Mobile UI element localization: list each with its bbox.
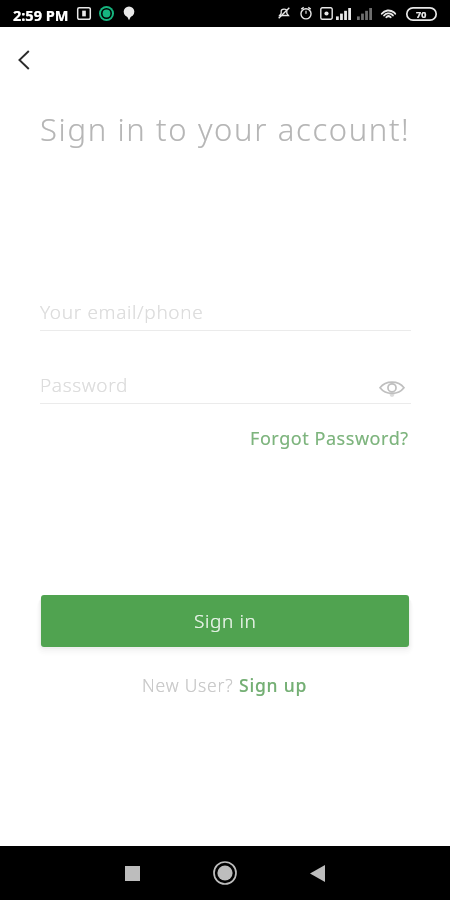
button[interactable]: Home: [197, 846, 253, 900]
button[interactable]: Back: [2, 38, 46, 82]
button[interactable]: Back: [289, 846, 345, 900]
staticText: Sign in to your account!: [40, 108, 411, 150]
staticText: New User?: [142, 673, 239, 697]
staticText: Forgot Password?: [250, 426, 409, 451]
staticText: Sign up: [239, 673, 308, 697]
staticText: 2:59 PM: [13, 5, 69, 25]
button[interactable]: Recent apps: [104, 846, 160, 900]
button[interactable]: Sign in: [41, 595, 409, 647]
staticText: Sign in: [194, 608, 257, 634]
staticText: 70: [416, 8, 427, 20]
staticText: Password: [40, 372, 129, 398]
staticText: Your email/phone: [40, 299, 204, 325]
button[interactable]: Show password: [376, 372, 408, 404]
button[interactable]: Forgot Password?: [242, 418, 417, 459]
button[interactable]: Sign up: [239, 673, 308, 697]
